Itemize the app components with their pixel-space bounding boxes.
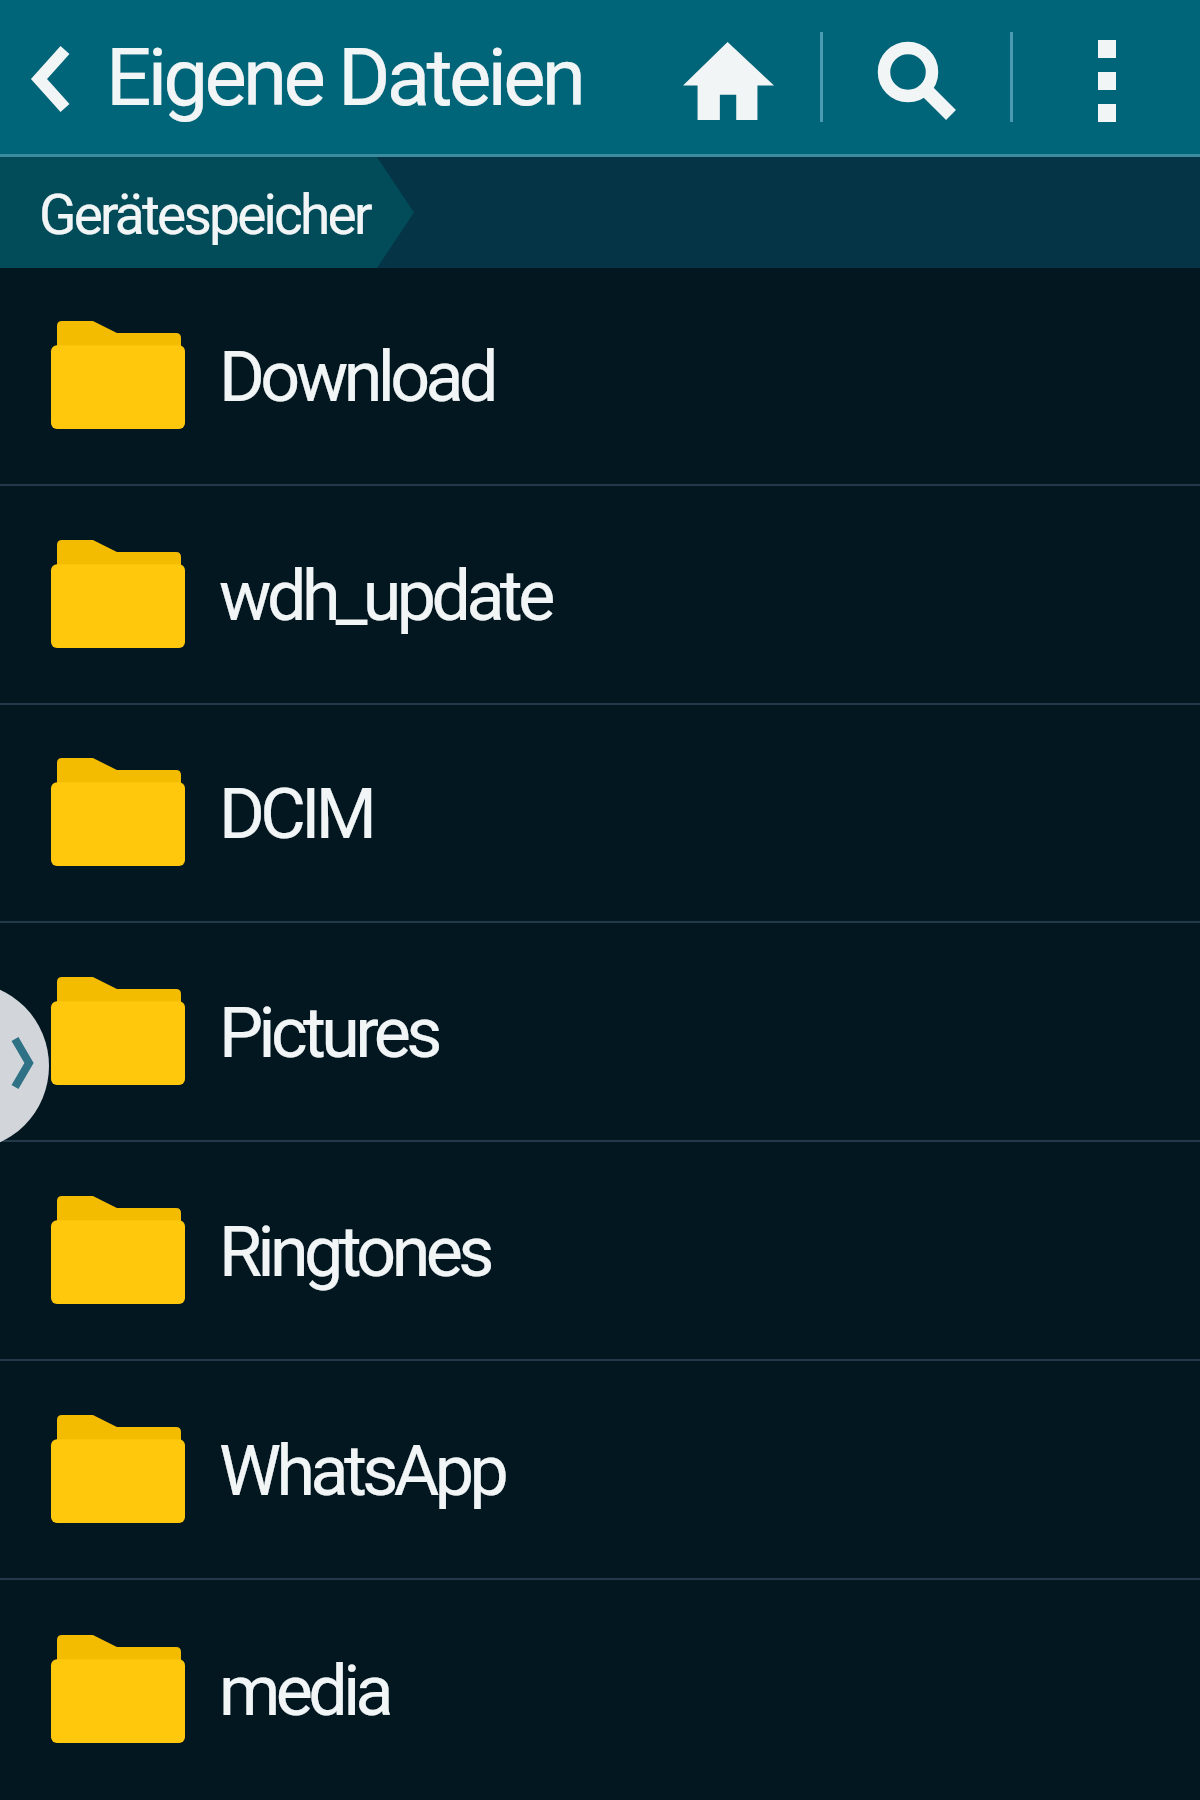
button[interactable]: More options <box>1050 0 1170 154</box>
staticText: Download <box>219 336 494 418</box>
button[interactable]: Back <box>0 0 100 154</box>
staticText: WhatsApp <box>219 1430 505 1512</box>
staticText: DCIM <box>219 773 373 855</box>
staticText: Ringtones <box>219 1211 490 1293</box>
staticText: Pictures <box>219 992 438 1074</box>
button[interactable]: Gerätespeicher <box>0 157 414 268</box>
staticText: Gerätespeicher <box>39 183 370 247</box>
staticText: media <box>219 1650 390 1732</box>
button[interactable]: Edge panel <box>0 982 49 1150</box>
button[interactable]: DCIM <box>0 705 1200 921</box>
staticText: wdh_update <box>219 555 551 637</box>
staticText: Eigene Dateien <box>106 31 583 125</box>
button[interactable]: Ringtones <box>0 1142 1200 1359</box>
button[interactable]: Download <box>0 268 1200 484</box>
button[interactable]: WhatsApp <box>0 1361 1200 1578</box>
button[interactable]: media <box>0 1580 1200 1800</box>
button[interactable]: Pictures <box>0 923 1200 1140</box>
button[interactable]: wdh_update <box>0 486 1200 703</box>
button[interactable]: Search <box>847 0 967 154</box>
button[interactable]: Home <box>669 0 789 154</box>
